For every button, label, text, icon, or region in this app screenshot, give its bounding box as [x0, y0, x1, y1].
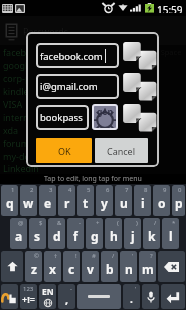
- staticText: w: [23, 195, 34, 211]
- button[interactable]: i@gmail.com: [36, 74, 119, 99]
- staticText: b: [106, 261, 114, 277]
- staticText: /: [112, 252, 115, 260]
- button[interactable]: j: [124, 218, 141, 249]
- staticText: q: [6, 195, 14, 211]
- button[interactable]: a: [10, 218, 27, 249]
- button[interactable]: my-domain: [3, 149, 186, 162]
- staticText: 5: [87, 186, 91, 194]
- button[interactable]: Copy to clipboard: [122, 103, 150, 130]
- button[interactable]: i: [134, 185, 151, 216]
- staticText: VISA: [3, 98, 23, 110]
- button[interactable]: Cancel: [95, 138, 148, 163]
- staticText: -: [79, 219, 81, 227]
- button[interactable]: d: [48, 218, 65, 249]
- button[interactable]: e: [39, 185, 56, 216]
- staticText: 3: [49, 186, 53, 194]
- button[interactable]: Passwords: [0, 16, 186, 45]
- staticText: r: [64, 195, 70, 211]
- staticText: 2: [30, 186, 34, 194]
- button[interactable]: VISA: [3, 97, 186, 110]
- staticText: forum.com: [3, 137, 50, 149]
- staticText: ,: [65, 292, 69, 307]
- staticText: z: [31, 261, 37, 277]
- staticText: Passwords: [23, 25, 69, 37]
- button[interactable]: internet.ru: [3, 110, 186, 123]
- button[interactable]: t: [77, 185, 94, 216]
- button[interactable]: g: [86, 218, 103, 249]
- button[interactable]: k: [143, 218, 160, 249]
- staticText: +!=: [22, 293, 35, 305]
- staticText: i@gmail.com: [40, 80, 98, 93]
- button[interactable]: b: [101, 251, 118, 282]
- button[interactable]: l: [162, 218, 179, 249]
- staticText: @: [18, 219, 24, 227]
- staticText: t: [83, 195, 89, 211]
- button[interactable]: Gesture typing: [1, 284, 18, 309]
- button[interactable]: xda: [3, 123, 186, 136]
- staticText: my-domain: [3, 150, 52, 162]
- button[interactable]: p: [172, 185, 185, 216]
- button[interactable]: Copy to clipboard: [122, 41, 150, 68]
- staticText: g: [91, 228, 99, 244]
- button[interactable]: kindle.com: [3, 84, 186, 97]
- staticText: †: [54, 252, 58, 260]
- button[interactable]: facebook.com: [36, 43, 119, 68]
- button[interactable]: Linkedin: [3, 162, 186, 174]
- button[interactable]: corp-pc: [3, 71, 186, 84]
- button[interactable]: z: [25, 251, 42, 282]
- staticText: /: [154, 219, 157, 227]
- button[interactable]: n: [120, 251, 137, 282]
- staticText: &: [57, 219, 62, 227]
- staticText: 0: [178, 186, 182, 194]
- staticText: e: [44, 195, 52, 211]
- staticText: c: [68, 261, 75, 277]
- staticText: y: [101, 195, 108, 211]
- staticText: $: [39, 219, 43, 227]
- button[interactable]: c: [63, 251, 80, 282]
- button[interactable]: q: [1, 185, 18, 216]
- button[interactable]: Space: [77, 284, 121, 309]
- staticText: gen: [97, 106, 113, 118]
- staticText: i: [141, 195, 145, 211]
- button[interactable]: bookpass: [36, 105, 89, 130]
- button[interactable]: y: [96, 185, 113, 216]
- button[interactable]: r: [58, 185, 75, 216]
- staticText: corp-pc: [3, 72, 35, 84]
- button[interactable]: .: [123, 284, 140, 309]
- button[interactable]: +!=: [20, 284, 37, 309]
- button[interactable]: x: [44, 251, 61, 282]
- staticText: +: [96, 219, 100, 227]
- staticText: internet.ru: [3, 111, 49, 123]
- button[interactable]: f: [67, 218, 84, 249]
- staticText: *: [172, 219, 176, 227]
- button[interactable]: google.com: [3, 58, 186, 71]
- staticText: d: [53, 228, 61, 244]
- button[interactable]: Voice input: [142, 284, 159, 309]
- button[interactable]: h: [105, 218, 122, 249]
- button[interactable]: ,: [58, 284, 75, 309]
- button[interactable]: Generate password: [92, 104, 118, 130]
- button[interactable]: m: [139, 251, 156, 282]
- staticText: ©: [34, 252, 39, 260]
- staticText: 15:59: [157, 3, 183, 13]
- staticText: 6: [106, 186, 110, 194]
- button[interactable]: facebook.com: [3, 45, 186, 58]
- staticText: .: [130, 292, 133, 306]
- button[interactable]: v: [82, 251, 99, 282]
- staticText: Back Space: [142, 47, 182, 57]
- staticText: EN: [42, 286, 54, 298]
- button[interactable]: u: [115, 185, 132, 216]
- button[interactable]: Enter: [161, 284, 185, 309]
- button[interactable]: OK: [36, 138, 92, 163]
- button[interactable]: forum.com: [3, 136, 186, 149]
- button[interactable]: o: [153, 185, 170, 216]
- button[interactable]: w: [20, 185, 37, 216]
- button[interactable]: Copy to clipboard: [122, 72, 150, 99]
- button[interactable]: Switch language: [39, 284, 56, 309]
- staticText: p: [175, 195, 183, 211]
- staticText: #: [92, 252, 96, 260]
- button[interactable]: Backspace: [158, 251, 185, 282]
- button[interactable]: Shift: [1, 251, 23, 282]
- button[interactable]: s: [29, 218, 46, 249]
- staticText: bookpass: [40, 111, 83, 124]
